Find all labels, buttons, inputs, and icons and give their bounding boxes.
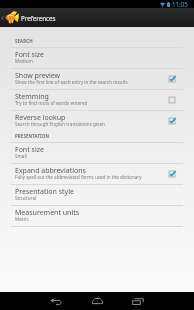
staticText: Measurement units (15, 208, 80, 218)
staticText: Try to find roots of words entered (15, 100, 88, 106)
staticText: Font size (15, 145, 44, 155)
staticText: Stemming (15, 92, 49, 102)
staticText: Expand abbreviations (15, 166, 86, 176)
staticText: SEARCH (15, 38, 33, 44)
button[interactable]: Home (83, 292, 111, 310)
staticText: Show preview (15, 71, 61, 81)
button[interactable]: Font size (0, 143, 194, 163)
staticText: Fully spell out the abbreviated forms us… (15, 174, 142, 180)
button[interactable]: Navigate up (0, 8, 20, 27)
button[interactable]: Expand abbreviations (0, 164, 194, 184)
staticText: Small (15, 153, 27, 159)
button[interactable]: Recent apps (124, 292, 152, 310)
staticText: Reverse lookup (15, 113, 66, 123)
staticText: Structural (15, 195, 37, 201)
staticText: Metric (15, 216, 29, 222)
button[interactable]: Stemming (0, 90, 194, 110)
staticText: Font size (15, 50, 44, 60)
staticText: Medium (15, 58, 33, 64)
button[interactable]: Font size (0, 48, 194, 68)
button[interactable]: Show preview (0, 69, 194, 89)
staticText: Preferences (21, 14, 56, 22)
staticText: Search through English translations give… (15, 121, 105, 127)
button[interactable]: Back (42, 292, 70, 310)
staticText: Show the first line of each entry in the… (15, 79, 128, 85)
staticText: PRESENTATION (15, 133, 50, 139)
button[interactable]: Measurement units (0, 206, 194, 226)
staticText: 11:05 (172, 0, 188, 8)
staticText: Presentation style (15, 187, 74, 197)
button[interactable]: Reverse lookup (0, 111, 194, 131)
button[interactable]: Presentation style (0, 185, 194, 205)
